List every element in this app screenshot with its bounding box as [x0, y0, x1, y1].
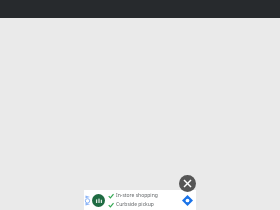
other: Ad info	[85, 193, 90, 207]
staticText: Curbside pickup	[116, 201, 154, 208]
button[interactable]: Ad info	[84, 190, 196, 210]
button[interactable]: Close ad	[179, 175, 196, 192]
button[interactable]: AdChoices	[180, 193, 194, 207]
staticText: In-store shopping	[116, 192, 158, 199]
